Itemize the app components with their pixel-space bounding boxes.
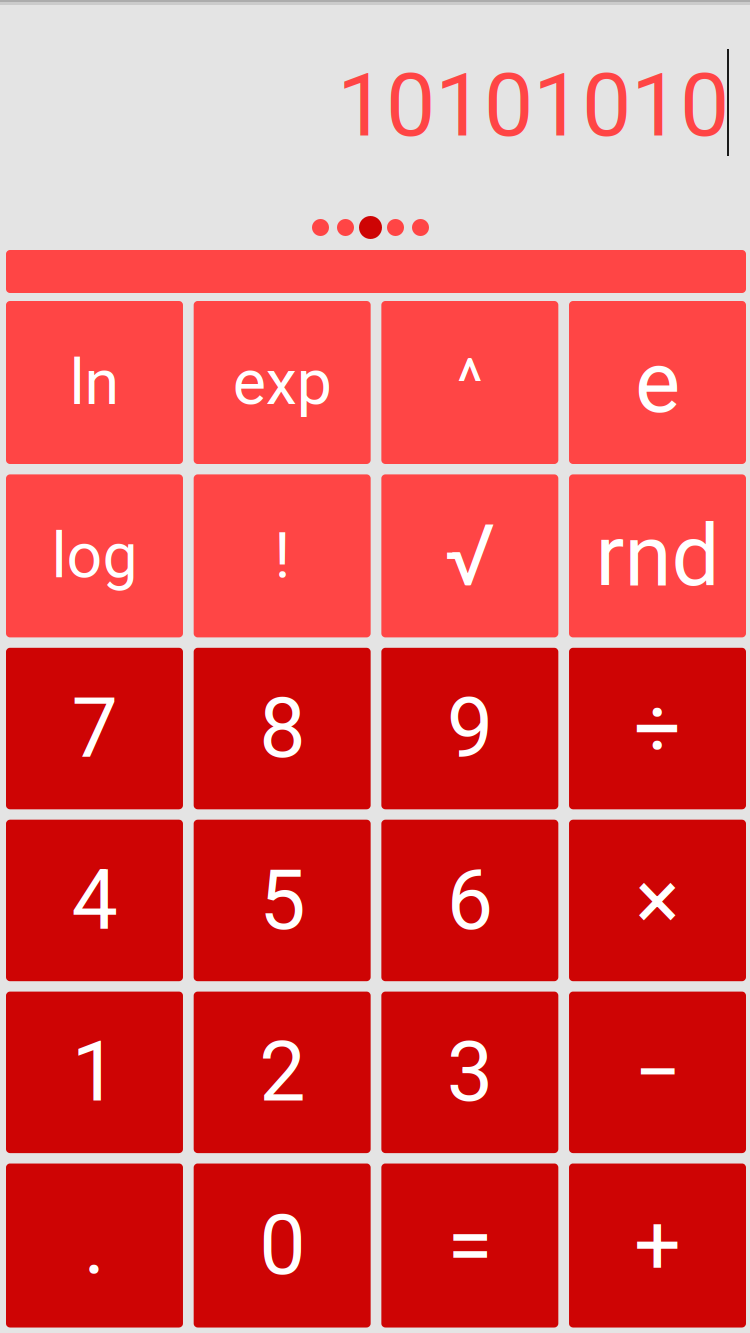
staticText: 3 <box>447 1024 493 1121</box>
staticText: ln <box>69 346 119 419</box>
button[interactable]: 9 <box>381 648 558 809</box>
button[interactable]: Square root <box>381 474 558 637</box>
button[interactable]: Equals <box>381 1163 558 1327</box>
staticText: exp <box>233 346 332 419</box>
button[interactable]: Natural log <box>6 301 183 464</box>
staticText: 2 <box>259 1024 305 1121</box>
button[interactable]: 6 <box>381 820 558 981</box>
button[interactable]: Multiply <box>569 820 746 981</box>
staticText: log <box>51 519 137 593</box>
button[interactable]: Subtract <box>569 992 746 1153</box>
staticText: 4 <box>71 852 117 949</box>
staticText: 10101010 <box>337 54 729 157</box>
button[interactable]: Exponential <box>194 301 371 464</box>
button[interactable]: 3 <box>381 992 558 1153</box>
button[interactable]: 0 <box>194 1163 371 1327</box>
staticText: 5 <box>259 852 305 949</box>
staticText: rnd <box>595 506 719 606</box>
button[interactable]: Euler's number <box>569 301 746 464</box>
button[interactable]: 4 <box>6 820 183 981</box>
button[interactable]: 5 <box>194 820 371 981</box>
staticText: 1 <box>71 1024 117 1121</box>
staticText: + <box>634 1197 681 1294</box>
button[interactable]: Divide <box>569 648 746 809</box>
staticText: × <box>635 852 679 949</box>
button[interactable]: Add <box>569 1163 746 1327</box>
staticText: 6 <box>447 852 493 949</box>
button[interactable]: 1 <box>6 992 183 1153</box>
staticText: 7 <box>71 680 117 777</box>
button[interactable]: Power <box>381 301 558 464</box>
button[interactable]: 7 <box>6 648 183 809</box>
staticText: 9 <box>447 680 493 777</box>
button[interactable]: Decimal point <box>6 1163 183 1327</box>
button[interactable]: 2 <box>194 992 371 1153</box>
button[interactable]: 8 <box>194 648 371 809</box>
staticText: ! <box>274 519 290 593</box>
staticText: . <box>83 1197 105 1294</box>
button[interactable]: Log <box>6 474 183 637</box>
staticText: ^ <box>457 346 483 419</box>
staticText: = <box>447 1197 492 1294</box>
staticText: e <box>635 332 680 432</box>
button[interactable]: Random <box>569 474 746 637</box>
staticText: − <box>634 1024 681 1121</box>
staticText: 8 <box>259 680 305 777</box>
staticText: 0 <box>259 1197 305 1294</box>
staticText: ÷ <box>634 680 681 777</box>
button[interactable]: Factorial <box>194 474 371 637</box>
staticText: √ <box>444 506 495 606</box>
